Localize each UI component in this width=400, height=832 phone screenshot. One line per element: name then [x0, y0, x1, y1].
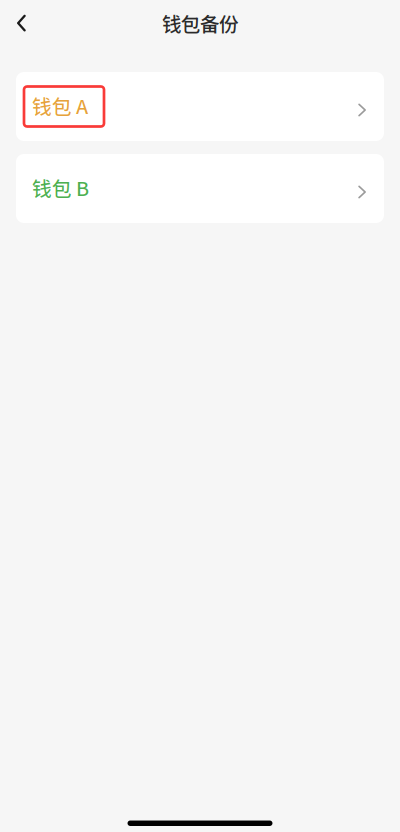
staticText: 钱包 A: [32, 91, 88, 120]
button[interactable]: 钱包 B: [16, 154, 384, 223]
button[interactable]: 钱包 A: [16, 72, 384, 141]
button[interactable]: Back: [0, 1, 56, 45]
staticText: 钱包备份: [162, 9, 238, 37]
staticText: 钱包 B: [32, 173, 89, 202]
